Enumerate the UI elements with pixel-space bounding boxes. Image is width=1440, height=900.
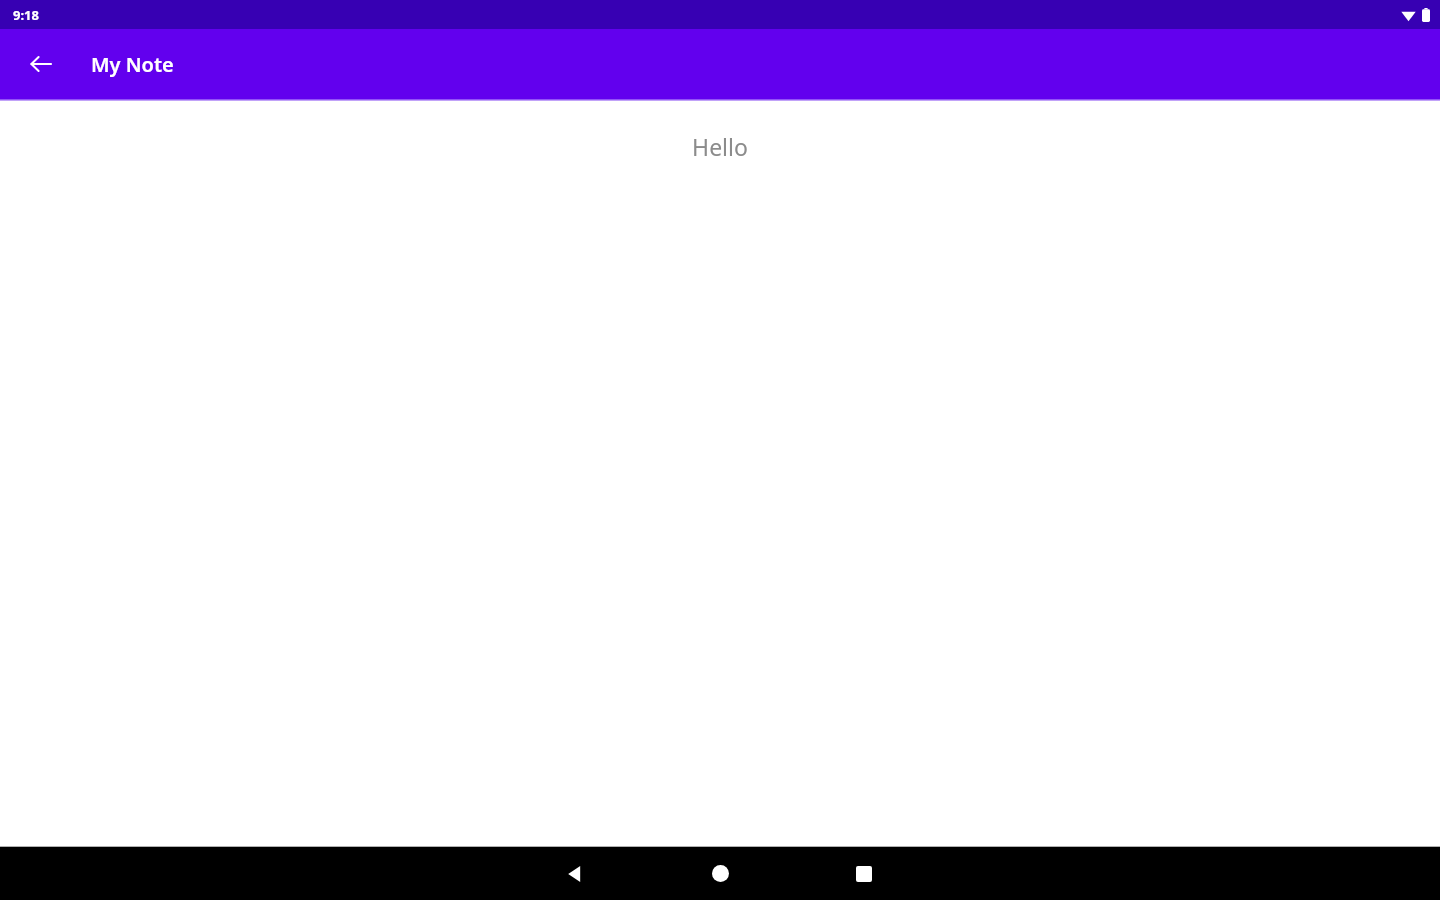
button[interactable]: Recent apps [828,847,900,900]
staticText: My Note [91,51,174,78]
button[interactable]: Home [684,847,756,900]
button[interactable]: Back [539,847,611,900]
staticText: 9:18 [13,6,39,24]
staticText: Hello [0,131,1440,162]
button[interactable]: Back [17,40,65,88]
